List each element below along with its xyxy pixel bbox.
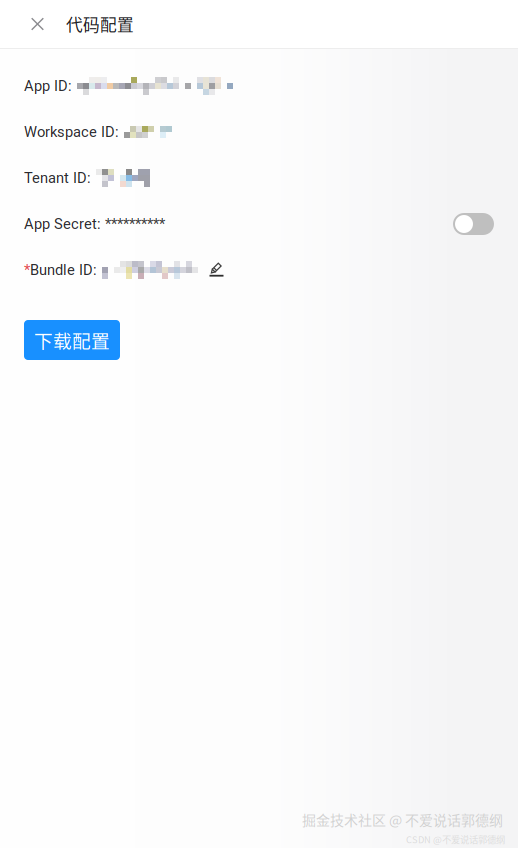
staticText: 代码配置: [66, 12, 134, 36]
staticText: Workspace ID:: [24, 123, 119, 141]
button[interactable]: Reveal App Secret: [453, 213, 518, 235]
button[interactable]: Edit Bundle ID: [209, 261, 224, 279]
staticText: 掘金技术社区 @ 不爱说话郭德纲: [302, 809, 503, 829]
staticText: Tenant ID:: [24, 169, 91, 187]
staticText: Bundle ID:: [30, 261, 97, 279]
button[interactable]: 下载配置: [24, 320, 120, 360]
staticText: 下载配置: [34, 326, 110, 353]
staticText: App Secret:: [24, 215, 101, 233]
staticText: CSDN @不爱说话郭德纲: [406, 832, 505, 846]
staticText: *: [24, 261, 30, 279]
staticText: **********: [101, 215, 165, 233]
button[interactable]: Close: [0, 0, 66, 48]
staticText: App ID:: [24, 77, 72, 95]
